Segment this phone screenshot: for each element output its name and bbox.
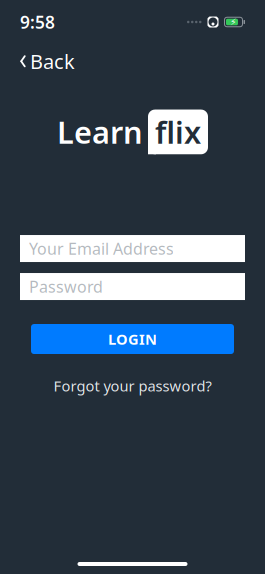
- staticText: Password: [29, 276, 103, 297]
- staticText: Forgot your password?: [53, 376, 211, 395]
- button[interactable]: Your Email Address: [20, 235, 245, 262]
- staticText: Your Email Address: [29, 238, 174, 259]
- staticText: flix: [155, 112, 201, 152]
- staticText: ⚡︎: [230, 17, 237, 27]
- button[interactable]: LOGIN: [31, 324, 234, 354]
- staticText: Back: [30, 48, 75, 75]
- staticText: 9:58: [20, 10, 55, 33]
- button[interactable]: Password: [20, 273, 245, 300]
- button[interactable]: Back: [17, 42, 77, 81]
- button[interactable]: Forgot your password?: [45, 371, 219, 400]
- staticText: LOGIN: [108, 329, 157, 349]
- staticText: Learn: [57, 112, 143, 152]
